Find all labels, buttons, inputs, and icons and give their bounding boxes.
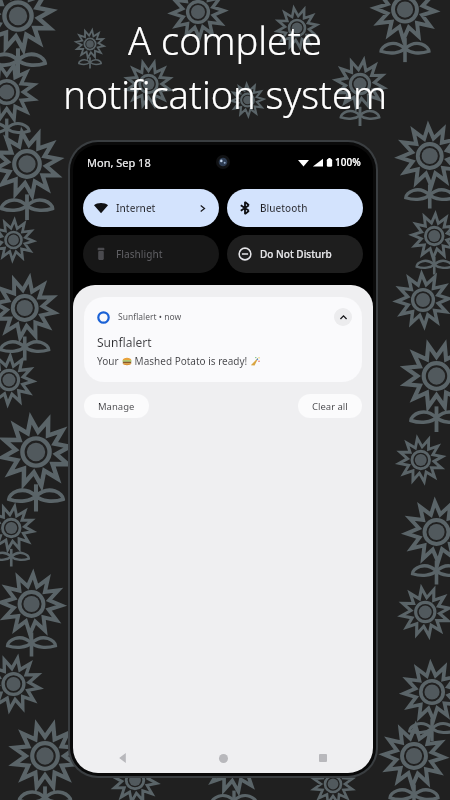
button[interactable]: Sunflalert • now xyxy=(84,297,362,382)
staticText: 100% xyxy=(335,155,361,169)
staticText: Mon, Sep 18 xyxy=(87,155,151,170)
button[interactable]: Manage xyxy=(84,394,149,418)
button[interactable]: Do Not Disturb xyxy=(227,235,363,273)
staticText: Sunflalert xyxy=(97,334,152,350)
button[interactable]: Clear all xyxy=(298,394,362,418)
staticText: Your xyxy=(97,354,122,368)
button[interactable]: Recent apps xyxy=(273,743,373,773)
button[interactable]: Home xyxy=(173,743,273,773)
staticText: Sunflalert • now xyxy=(118,311,182,323)
staticText: Clear all xyxy=(312,400,348,413)
staticText: A complete xyxy=(128,14,322,66)
staticText: notification system xyxy=(63,68,387,120)
staticText: Bluetooth xyxy=(260,201,308,215)
staticText: Internet xyxy=(116,201,156,215)
button[interactable]: Collapse notification xyxy=(334,308,352,326)
button[interactable]: Back xyxy=(73,743,173,773)
staticText: Manage xyxy=(98,400,135,413)
staticText: Mashed Potato is ready! xyxy=(132,354,250,368)
button[interactable]: Bluetooth xyxy=(227,189,363,227)
staticText: Flashlight xyxy=(116,247,163,261)
button[interactable]: Flashlight xyxy=(83,235,219,273)
staticText: Do Not Disturb xyxy=(260,247,332,261)
button[interactable]: Internet xyxy=(83,189,219,227)
